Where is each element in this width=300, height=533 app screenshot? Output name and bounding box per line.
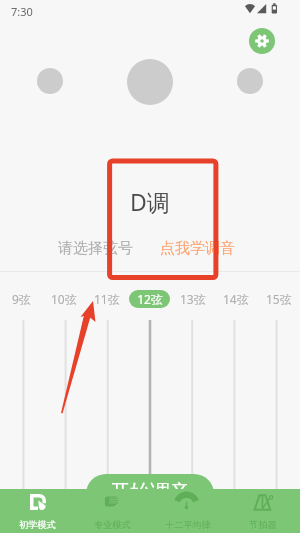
staticText: 11弦 bbox=[94, 291, 120, 307]
button[interactable]: 初学模式 bbox=[0, 489, 75, 533]
staticText: 14弦 bbox=[223, 291, 249, 307]
button[interactable]: 专业模式 bbox=[75, 489, 150, 533]
staticText: 10弦 bbox=[51, 291, 77, 307]
staticText: 节拍器 bbox=[249, 519, 277, 531]
staticText: D调 bbox=[130, 186, 170, 217]
button[interactable]: 10弦 bbox=[42, 282, 85, 316]
button[interactable]: 9弦 bbox=[0, 282, 42, 316]
button[interactable]: 12弦 bbox=[128, 282, 171, 316]
staticText: 专业模式 bbox=[94, 519, 131, 531]
staticText: 7:30 bbox=[11, 4, 33, 19]
staticText: 15弦 bbox=[266, 291, 292, 307]
button[interactable]: 开始调音 bbox=[86, 474, 214, 514]
button[interactable]: 13弦 bbox=[171, 282, 214, 316]
staticText: 初学模式 bbox=[19, 519, 56, 531]
staticText: 13弦 bbox=[180, 291, 206, 307]
button[interactable]: 点我学调音 bbox=[160, 239, 235, 258]
button[interactable]: 11弦 bbox=[85, 282, 128, 316]
staticText: 开始调音 bbox=[110, 480, 190, 505]
staticText: 9弦 bbox=[12, 291, 31, 307]
button[interactable]: 14弦 bbox=[214, 282, 257, 316]
staticText: 十二平均律 bbox=[165, 519, 211, 531]
button[interactable]: 15弦 bbox=[257, 282, 300, 316]
button[interactable]: Settings bbox=[249, 28, 275, 54]
button[interactable]: 节拍器 bbox=[225, 489, 300, 533]
button[interactable]: 十二平均律 bbox=[150, 489, 225, 533]
staticText: 请选择弦号 bbox=[58, 239, 133, 258]
staticText: 12弦 bbox=[137, 291, 163, 307]
